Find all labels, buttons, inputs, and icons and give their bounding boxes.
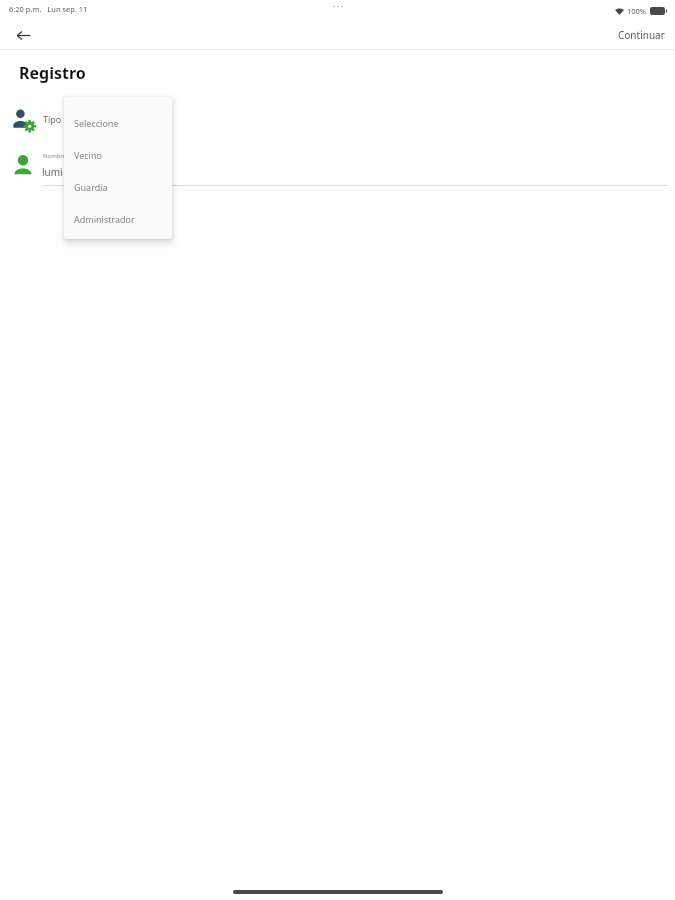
staticText: lumi bbox=[42, 165, 63, 179]
staticText: Registro bbox=[19, 62, 86, 84]
staticText: Nombre bbox=[43, 152, 67, 160]
staticText: Seleccione bbox=[74, 117, 119, 129]
staticText: Vecino bbox=[74, 149, 102, 161]
staticText: • • • bbox=[333, 3, 343, 11]
button[interactable]: Administrador bbox=[64, 203, 172, 235]
staticText: Administrador bbox=[74, 213, 135, 225]
button[interactable]: Guardia bbox=[64, 171, 172, 203]
staticText: 6:20 p.m. Lun sep. 11 bbox=[9, 4, 88, 14]
button[interactable]: Back bbox=[8, 20, 38, 50]
button[interactable]: Vecino bbox=[64, 139, 172, 171]
staticText: Tipo bbox=[43, 113, 62, 125]
staticText: Continuar bbox=[618, 28, 665, 42]
button[interactable]: Continuar bbox=[618, 28, 665, 42]
staticText: Guardia bbox=[74, 181, 108, 193]
staticText: 100% bbox=[627, 6, 647, 16]
button[interactable]: Seleccione bbox=[64, 107, 172, 139]
